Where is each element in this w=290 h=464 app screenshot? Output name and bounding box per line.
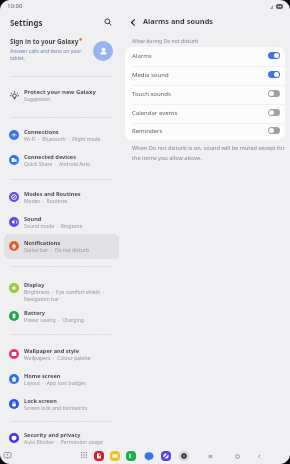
staticText: Connected devices	[24, 153, 77, 161]
staticText: Power saving · Charging	[24, 317, 119, 324]
staticText: Reminders	[132, 127, 163, 135]
button[interactable]: Protect your new Galaxy	[4, 84, 118, 107]
button[interactable]: Lock screen	[4, 392, 119, 417]
button[interactable]: Display	[4, 276, 119, 308]
staticText: Alarms and sounds	[143, 16, 214, 26]
staticText: Brightness · Eye comfort shield · Naviga…	[24, 289, 106, 303]
button[interactable]: Battery	[4, 304, 119, 329]
staticText: Connections	[24, 128, 59, 136]
staticText: Suggestion	[24, 96, 51, 103]
staticText: 10:00	[7, 2, 23, 10]
button[interactable]: Keyboard	[2, 450, 12, 460]
button[interactable]: Sign in to your Galaxy	[4, 33, 118, 69]
staticText: Sound	[24, 215, 42, 223]
button[interactable]: Messages	[144, 451, 154, 461]
staticText: Quick Share · Android Auto	[24, 161, 119, 168]
button[interactable]: Back	[126, 15, 140, 29]
button[interactable]: Media sound	[125, 66, 285, 85]
button[interactable]: Security and privacy	[4, 426, 119, 451]
staticText: Media sound	[132, 71, 169, 79]
button[interactable]: Files	[110, 451, 120, 461]
button[interactable]: Modes and Routines	[4, 185, 119, 210]
button[interactable]: Browser	[161, 451, 171, 461]
staticText: Wi-Fi · Bluetooth · Flight mode	[24, 136, 119, 143]
staticText: Notifications	[24, 239, 61, 247]
staticText: Allow during Do not disturb	[132, 38, 199, 45]
button[interactable]: Phone	[126, 451, 136, 461]
button[interactable]: Back	[254, 451, 264, 461]
staticText: Layout · App icon badges	[24, 380, 119, 387]
staticText: Lock screen	[24, 397, 57, 405]
button[interactable]: Home screen	[4, 367, 119, 392]
staticText: Answer calls and texts on your tablet.	[10, 48, 86, 62]
button[interactable]: Home	[232, 451, 242, 461]
button[interactable]: Camera	[179, 451, 189, 461]
staticText: Modes and Routines	[24, 190, 81, 198]
staticText: Sound mode · Ringtone	[24, 223, 119, 230]
button[interactable]: Sound	[4, 210, 119, 235]
staticText: Calendar events	[132, 109, 178, 117]
button[interactable]: All apps	[79, 450, 89, 460]
staticText: Touch sounds	[132, 90, 171, 98]
button[interactable]: Calendar events	[125, 104, 285, 123]
button[interactable]: Wallpaper and style	[4, 342, 119, 367]
staticText: Screen lock and biometrics	[24, 405, 119, 412]
staticText: Sign in to your Galaxy	[10, 37, 79, 46]
staticText: Status bar · Do not disturb	[24, 247, 119, 254]
staticText: Wallpaper and style	[24, 347, 80, 355]
button[interactable]: Alarms	[125, 47, 285, 66]
button[interactable]: Connections	[4, 123, 119, 148]
staticText: Auto Blocker · Permission usage	[24, 439, 119, 446]
staticText: Security and privacy	[24, 431, 81, 439]
staticText: Alarms	[132, 52, 152, 60]
staticText: When Do not disturb is on, sound will be…	[132, 144, 287, 161]
button[interactable]: PDF	[94, 451, 104, 461]
staticText: Home screen	[24, 372, 61, 380]
button[interactable]: Notifications	[4, 234, 119, 259]
button[interactable]: Reminders	[125, 123, 285, 140]
button[interactable]: Connected devices	[4, 148, 119, 173]
button[interactable]: Recents	[205, 451, 215, 461]
staticText: Battery	[24, 309, 45, 317]
button[interactable]: Search	[101, 15, 114, 28]
staticText: Modes · Routines	[24, 198, 119, 205]
staticText: Wallpapers · Colour palette	[24, 355, 119, 362]
staticText: Settings	[10, 18, 43, 29]
staticText: Display	[24, 281, 45, 289]
staticText: Protect your new Galaxy	[24, 88, 96, 96]
button[interactable]: Touch sounds	[125, 85, 285, 104]
